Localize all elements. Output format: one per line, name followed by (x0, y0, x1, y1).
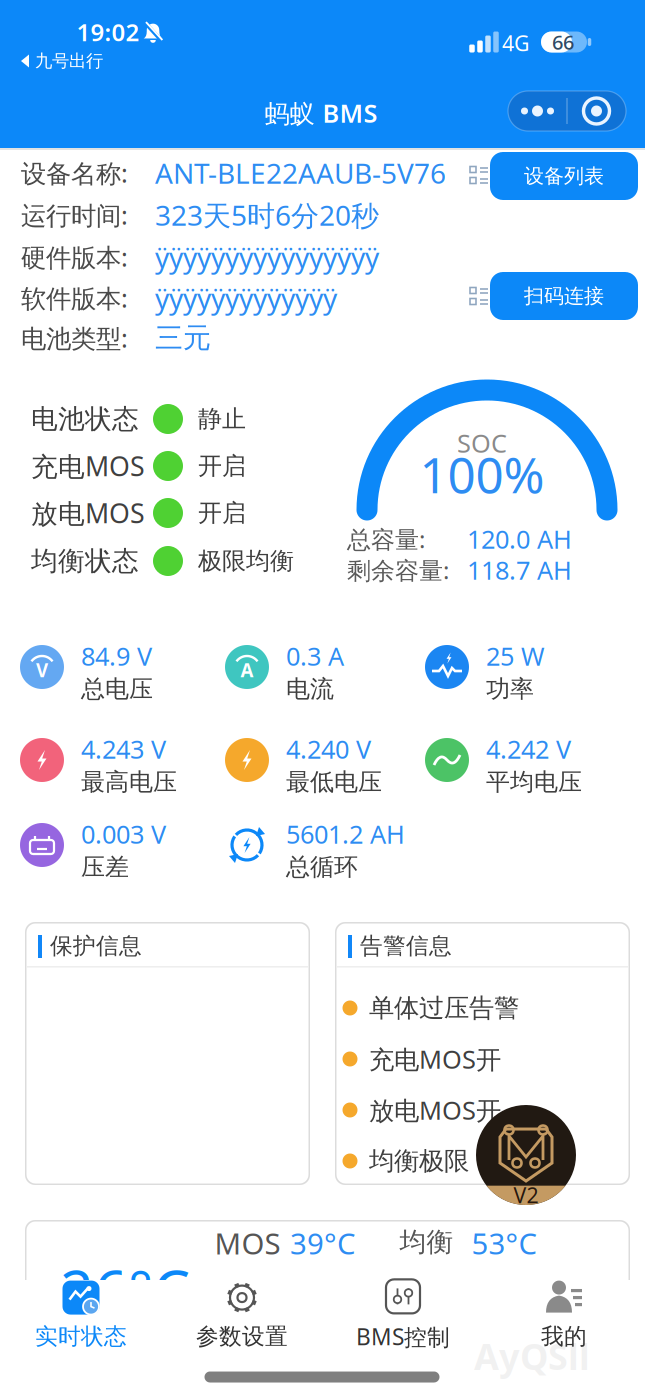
staticText: 总循环 (286, 852, 358, 882)
button[interactable]: 设备列表 (490, 152, 638, 200)
staticText: 4G (502, 29, 530, 57)
staticText: 单体过压告警 (369, 992, 519, 1023)
staticText: 4.242 V (486, 732, 571, 766)
staticText: 120.0 AH (467, 522, 572, 556)
staticText: 我的 (541, 1323, 587, 1350)
staticText: 均衡状态 (31, 545, 139, 577)
staticText: 电池类型: (21, 321, 128, 355)
staticText: 100% (419, 441, 544, 507)
button[interactable]: 实时状态 (0, 1272, 161, 1358)
staticText: 运行时间: (21, 198, 128, 232)
staticText: 电流 (286, 674, 334, 704)
staticText: 323天5时6分20秒 (155, 196, 379, 234)
staticText: 4.243 V (81, 732, 166, 766)
staticText: ANT-BLE22AAUB-5V76 (155, 154, 446, 192)
staticText: 硬件版本: (21, 240, 128, 274)
staticText: 总容量: (347, 523, 425, 555)
staticText: 39°C (290, 1223, 356, 1262)
button[interactable]: BMS控制 (322, 1272, 483, 1358)
staticText: 开启 (198, 498, 246, 528)
staticText: 4.240 V (286, 732, 371, 766)
staticText: 实时状态 (35, 1323, 127, 1350)
button[interactable]: 我的 (483, 1272, 644, 1358)
staticText: 53°C (471, 1223, 537, 1262)
staticText: 设备列表 (524, 164, 604, 188)
staticText: 平均电压 (486, 767, 582, 797)
staticText: ÿÿÿÿÿÿÿÿÿÿÿÿÿ (155, 279, 337, 317)
staticText: 25 W (486, 639, 545, 673)
staticText: ÿÿÿÿÿÿÿÿÿÿÿÿÿÿÿÿ (155, 238, 379, 276)
staticText: 开启 (198, 451, 246, 481)
staticText: 压差 (81, 852, 129, 882)
button[interactable]: 关闭 (567, 91, 625, 131)
staticText: V (36, 658, 48, 682)
staticText: 电池状态 (31, 403, 139, 435)
staticText: 极限均衡 (198, 546, 294, 576)
staticText: 告警信息 (360, 932, 452, 960)
staticText: 剩余容量: (347, 554, 449, 586)
button[interactable]: 更多 (508, 91, 566, 131)
staticText: 放电MOS开 (369, 1093, 501, 1127)
staticText: 参数设置 (196, 1323, 288, 1350)
staticText: 66 (552, 29, 574, 55)
staticText: 均衡极限 (369, 1145, 469, 1176)
staticText: 19:02 (76, 16, 139, 48)
staticText: 功率 (486, 674, 534, 704)
staticText: SOC (457, 426, 507, 460)
staticText: 三元 (155, 321, 211, 355)
staticText: 5601.2 AH (286, 817, 405, 851)
staticText: 扫码连接 (524, 284, 604, 308)
staticText: 设备名称: (21, 156, 128, 190)
staticText: 0.003 V (81, 817, 166, 851)
staticText: 0.3 A (286, 639, 344, 673)
staticText: MOS (214, 1223, 280, 1262)
staticText: 保护信息 (50, 932, 142, 960)
staticText: 九号出行 (35, 50, 103, 72)
staticText: 总电压 (81, 674, 153, 704)
staticText: 均衡 (399, 1226, 453, 1258)
button[interactable]: 参数设置 (161, 1272, 322, 1358)
staticText: 蚂蚁 BMS (264, 96, 377, 130)
staticText: V2 (513, 1181, 538, 1209)
staticText: 充电MOS (31, 448, 145, 484)
staticText: AyQSll (474, 1332, 590, 1380)
button[interactable]: 扫码连接 (490, 272, 638, 320)
staticText: 118.7 AH (467, 553, 572, 587)
staticText: 静止 (198, 404, 246, 434)
button[interactable]: 九号出行 (21, 50, 103, 72)
staticText: 最高电压 (81, 767, 177, 797)
staticText: 84.9 V (81, 639, 152, 673)
staticText: 软件版本: (21, 281, 128, 315)
staticText: 充电MOS开 (369, 1042, 501, 1076)
staticText: 26°C (60, 1251, 190, 1329)
staticText: 放电MOS (31, 495, 145, 531)
staticText: A (240, 658, 253, 682)
staticText: BMS控制 (356, 1321, 450, 1352)
staticText: 最低电压 (286, 767, 382, 797)
